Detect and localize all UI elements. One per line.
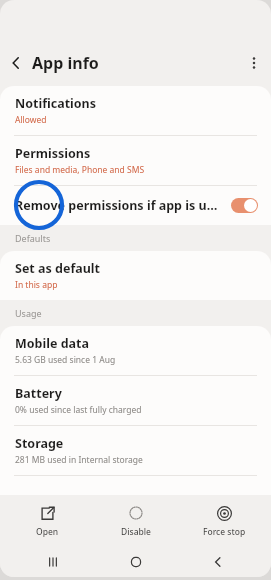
staticText: In this app [15, 279, 58, 291]
button[interactable]: Storage [0, 426, 271, 475]
staticText: App info [32, 52, 99, 74]
staticText: Disable [121, 526, 151, 538]
staticText: Permissions [15, 145, 91, 162]
staticText: Open [36, 526, 59, 538]
staticText: Files and media, Phone and SMS [15, 164, 145, 176]
staticText: 5.63 GB used since 1 Aug [15, 354, 116, 366]
staticText: Battery [15, 385, 62, 402]
button[interactable]: Set as default [0, 251, 271, 300]
staticText: 281 MB used in Internal storage [15, 454, 143, 466]
staticText: Storage [15, 435, 64, 452]
staticText: Mobile data [15, 335, 89, 352]
staticText: Remove permissions if app is unused [15, 197, 225, 214]
button[interactable]: Recent apps [23, 547, 83, 577]
staticText: Set as default [15, 260, 101, 277]
button[interactable]: Mobile data [0, 326, 271, 375]
button[interactable]: Battery [0, 376, 271, 425]
button[interactable]: Permissions [0, 136, 271, 185]
staticText: 0% used since last fully charged [15, 404, 142, 416]
staticText: Force stop [203, 526, 246, 538]
button[interactable]: More options [237, 46, 271, 80]
button[interactable]: Force stop [182, 501, 266, 542]
staticText: Allowed [15, 114, 47, 126]
button[interactable]: Back [188, 547, 248, 577]
button[interactable]: Back [0, 46, 32, 80]
button[interactable]: Home [106, 547, 166, 577]
staticText: Usage [15, 307, 42, 319]
staticText: Defaults [15, 232, 51, 244]
button[interactable]: Remove permissions if app is unused [0, 186, 271, 225]
button[interactable]: Notifications [0, 86, 271, 135]
staticText: Notifications [15, 95, 97, 112]
button[interactable]: Open [5, 501, 89, 542]
button[interactable]: Disable [94, 501, 178, 542]
button[interactable]: Remove permissions toggle [231, 198, 258, 213]
